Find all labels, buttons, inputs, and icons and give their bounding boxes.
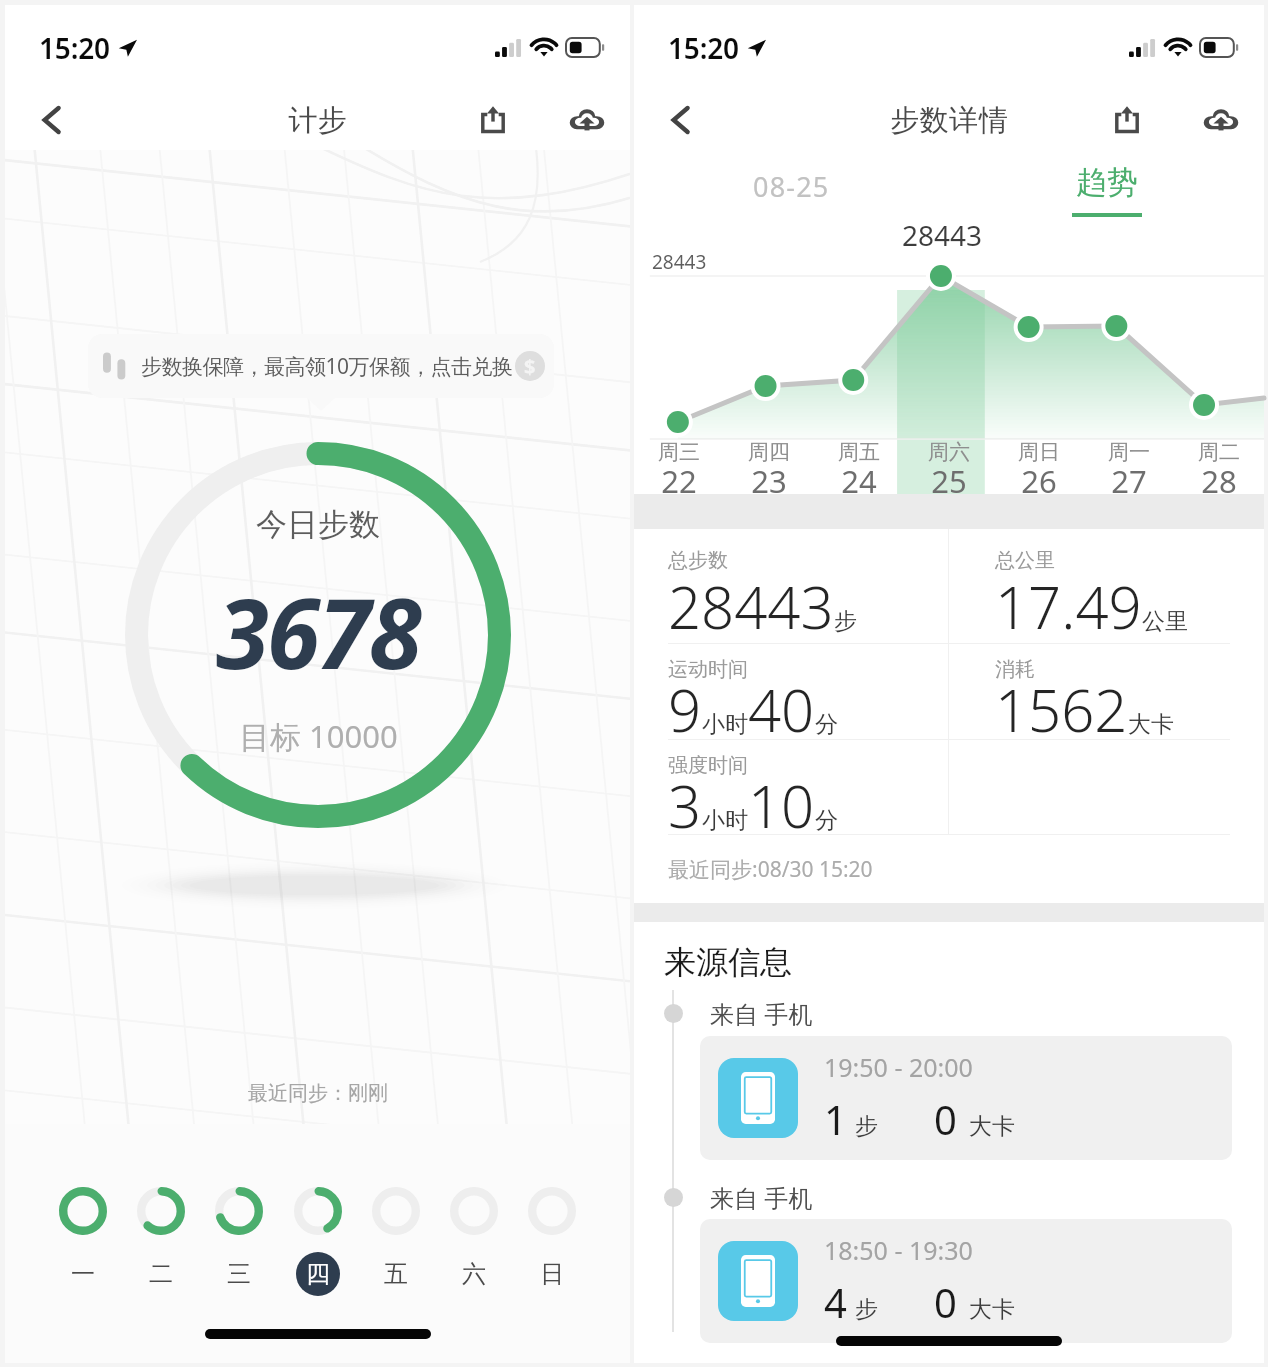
staticText: 步 xyxy=(834,607,857,636)
staticText: 四 xyxy=(306,1259,330,1289)
staticText: 计步 xyxy=(288,102,347,139)
button[interactable]: 19:50 - 20:00 xyxy=(700,1036,1232,1160)
staticText: 总步数 xyxy=(668,548,728,573)
button[interactable]: Back xyxy=(654,94,706,146)
staticText: 28443 xyxy=(902,216,983,254)
staticText: 来自 手机 xyxy=(710,997,813,1030)
staticText: 27 xyxy=(1111,460,1147,502)
staticText: 28443 xyxy=(668,567,834,646)
staticText: 1 xyxy=(824,1092,847,1146)
staticText: 周一 xyxy=(1108,439,1150,465)
staticText: 二 xyxy=(149,1259,173,1289)
button[interactable]: Share xyxy=(467,94,519,146)
staticText: 15:20 xyxy=(668,29,739,67)
staticText: 4 xyxy=(824,1275,847,1329)
button[interactable]: Upload to cloud xyxy=(1195,94,1247,146)
staticText: 周四 xyxy=(748,439,790,465)
staticText: 周三 xyxy=(658,439,700,465)
staticText: 来源信息 xyxy=(664,942,792,982)
staticText: 趋势 xyxy=(1076,163,1138,202)
button[interactable]: 二 xyxy=(136,1187,186,1296)
staticText: 一 xyxy=(71,1259,95,1289)
staticText: 0 xyxy=(934,1275,957,1329)
staticText: 分 xyxy=(815,806,838,835)
button[interactable]: Share xyxy=(1101,94,1153,146)
staticText: 28 xyxy=(1201,460,1237,502)
staticText: 1562 xyxy=(995,670,1128,749)
staticText: 六 xyxy=(462,1259,486,1289)
button[interactable]: 08-25 xyxy=(634,150,949,222)
staticText: 日 xyxy=(540,1259,564,1289)
staticText: 大卡 xyxy=(1128,710,1174,739)
staticText: 最近同步:08/30 15:20 xyxy=(668,855,873,884)
staticText: 周六 xyxy=(928,439,970,465)
staticText: 26 xyxy=(1021,460,1057,502)
button[interactable]: 三 xyxy=(214,1187,264,1296)
staticText: 步数换保障，最高领10万保额，点击兑换 xyxy=(141,352,513,381)
staticText: 0 xyxy=(934,1092,957,1146)
staticText: 三 xyxy=(227,1259,251,1289)
staticText: 周日 xyxy=(1018,439,1060,465)
staticText: 步数详情 xyxy=(890,102,1008,139)
staticText: 24 xyxy=(841,460,877,502)
staticText: 17.49 xyxy=(995,567,1142,646)
staticText: 来自 手机 xyxy=(710,1181,813,1214)
button[interactable]: Back xyxy=(25,94,77,146)
staticText: 15:20 xyxy=(39,29,110,67)
button[interactable]: 六 xyxy=(449,1187,499,1296)
staticText: 18:50 - 19:30 xyxy=(824,1233,973,1267)
staticText: 小时 xyxy=(702,710,748,739)
button[interactable]: 趋势 xyxy=(949,150,1264,222)
staticText: 目标 10000 xyxy=(239,715,398,757)
staticText: 分 xyxy=(815,710,838,739)
staticText: $ xyxy=(524,353,536,380)
staticText: 消耗 xyxy=(995,657,1035,682)
staticText: 最近同步：刚刚 xyxy=(248,1081,388,1106)
staticText: 9 xyxy=(668,670,702,749)
staticText: 大卡 xyxy=(969,1112,1015,1141)
staticText: 3 xyxy=(668,766,702,845)
button[interactable]: 步数换保障，最高领10万保额，点击兑换 xyxy=(88,334,554,398)
staticText: 五 xyxy=(384,1259,408,1289)
staticText: 大卡 xyxy=(969,1295,1015,1324)
staticText: 步 xyxy=(855,1112,878,1141)
staticText: 19:50 - 20:00 xyxy=(824,1050,973,1084)
staticText: 运动时间 xyxy=(668,657,748,682)
staticText: 步 xyxy=(855,1295,878,1324)
button[interactable]: Upload to cloud xyxy=(561,94,613,146)
button[interactable]: 五 xyxy=(371,1187,421,1296)
staticText: 今日步数 xyxy=(256,505,380,544)
staticText: 28443 xyxy=(652,249,707,275)
staticText: 3678 xyxy=(216,566,420,697)
staticText: 23 xyxy=(751,460,787,502)
staticText: 小时 xyxy=(702,806,748,835)
staticText: 周二 xyxy=(1198,439,1240,465)
staticText: 公里 xyxy=(1142,607,1188,636)
staticText: 08-25 xyxy=(753,168,830,205)
staticText: 10 xyxy=(748,766,815,845)
staticText: 22 xyxy=(661,460,697,502)
staticText: 25 xyxy=(931,460,967,502)
button[interactable]: 日 xyxy=(527,1187,577,1296)
staticText: 周五 xyxy=(838,439,880,465)
staticText: 强度时间 xyxy=(668,753,748,778)
button[interactable]: 18:50 - 19:30 xyxy=(700,1219,1232,1343)
button[interactable]: 四 xyxy=(293,1187,343,1296)
button[interactable]: 一 xyxy=(58,1187,108,1296)
staticText: 总公里 xyxy=(995,548,1055,573)
staticText: 40 xyxy=(748,670,815,749)
